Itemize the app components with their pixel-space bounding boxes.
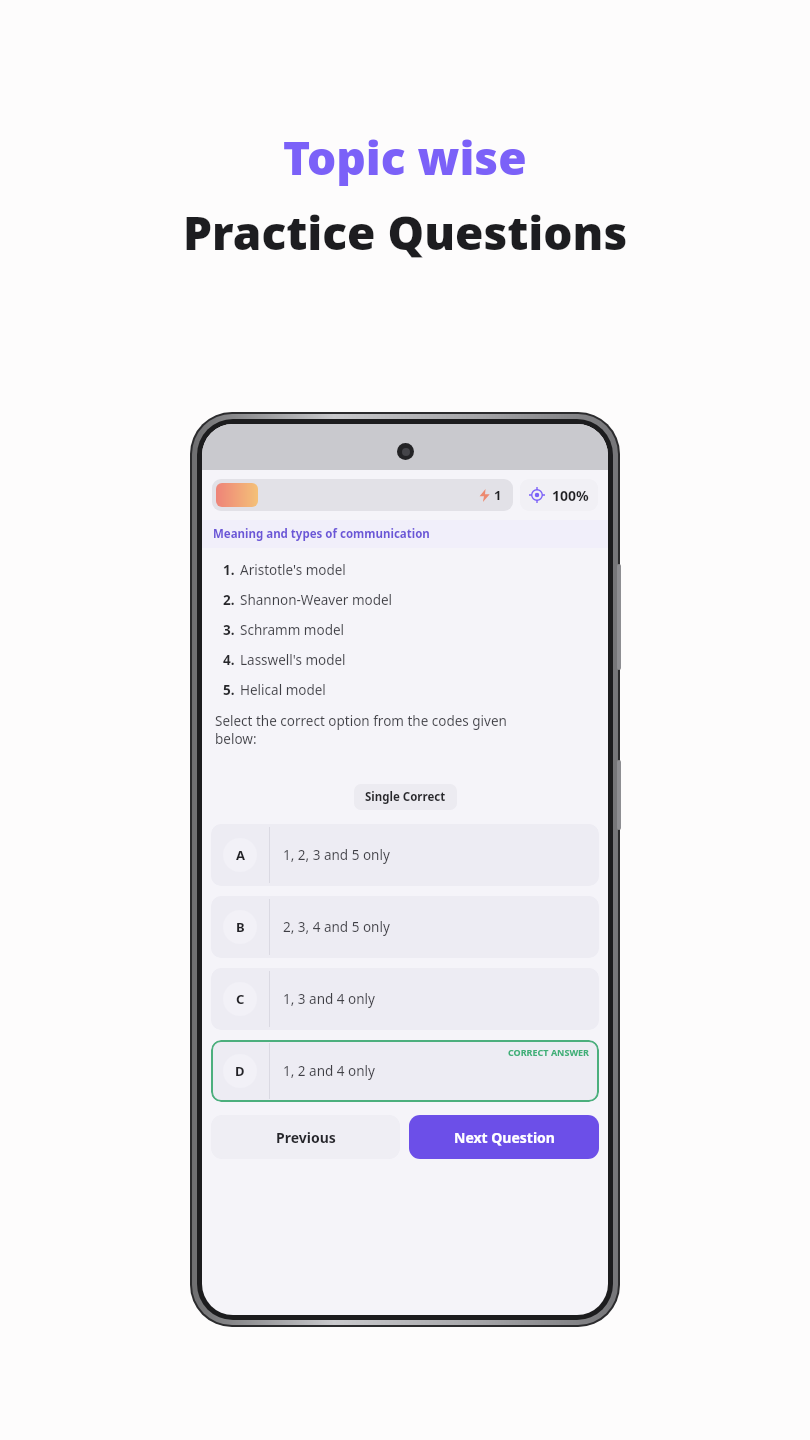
button[interactable]: Next Question <box>409 1115 599 1159</box>
staticText: Practice Questions <box>183 201 628 264</box>
button[interactable]: B <box>211 896 599 958</box>
staticText: 1 <box>494 486 502 504</box>
staticText: CORRECT ANSWER <box>508 1046 590 1058</box>
button[interactable]: Single Correct <box>354 784 457 810</box>
other: Accuracy <box>529 487 545 503</box>
staticText: Topic wise <box>283 126 527 189</box>
staticText: Single Correct <box>365 789 446 805</box>
button[interactable]: C <box>211 968 599 1030</box>
staticText: 2. <box>223 591 235 609</box>
button[interactable]: A <box>211 824 599 886</box>
staticText: 5. <box>223 681 235 699</box>
staticText: 2, 3, 4 and 5 only <box>283 918 390 936</box>
staticText: Meaning and types of communication <box>213 526 430 542</box>
button[interactable]: Accuracy <box>520 479 598 511</box>
staticText: Aristotle's model <box>240 561 346 579</box>
staticText: D <box>235 1062 245 1080</box>
staticText: 1. <box>223 561 235 579</box>
staticText: B <box>236 918 245 936</box>
staticText: A <box>236 846 245 864</box>
staticText: Shannon-Weaver model <box>240 591 393 609</box>
button[interactable]: D <box>211 1040 599 1102</box>
staticText: Lasswell's model <box>240 651 346 669</box>
button[interactable]: 1 <box>212 479 513 511</box>
button[interactable]: Previous <box>211 1115 400 1159</box>
staticText: 1, 3 and 4 only <box>283 990 375 1008</box>
staticText: 1, 2, 3 and 5 only <box>283 846 390 864</box>
staticText: Previous <box>276 1128 336 1147</box>
staticText: Helical model <box>240 681 326 699</box>
staticText: 3. <box>223 621 235 639</box>
staticText: 1, 2 and 4 only <box>283 1062 375 1080</box>
staticText: C <box>236 990 245 1008</box>
staticText: Schramm model <box>240 621 345 639</box>
staticText: 100% <box>552 486 589 505</box>
staticText: Next Question <box>454 1128 555 1147</box>
staticText: Select the correct option from the codes… <box>215 712 546 748</box>
staticText: 4. <box>223 651 235 669</box>
